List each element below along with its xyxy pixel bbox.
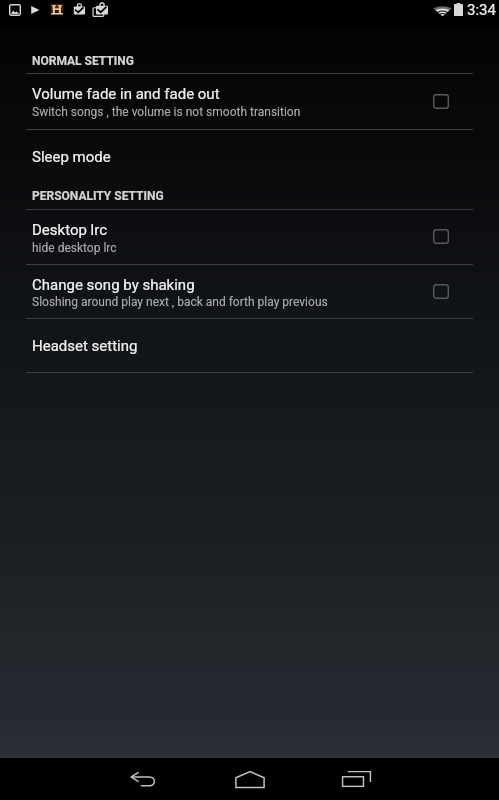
staticText: NORMAL SETTING	[32, 54, 134, 68]
button[interactable]: Back	[117, 758, 170, 800]
staticText: Switch songs , the volume is not smooth …	[32, 105, 301, 119]
staticText: Volume fade in and fade out	[32, 85, 220, 103]
button[interactable]: Home	[223, 758, 276, 800]
button[interactable]: Sleep mode	[0, 129, 499, 184]
button[interactable]: Recent apps	[330, 758, 383, 800]
button[interactable]: Headset setting	[0, 318, 499, 372]
staticText: hide desktop lrc	[32, 241, 117, 255]
staticText: Headset setting	[32, 337, 138, 355]
staticText: Desktop lrc	[32, 221, 108, 239]
staticText: 3:34	[467, 1, 496, 19]
staticText: Sleep mode	[32, 148, 111, 166]
staticText: PERSONALITY SETTING	[32, 189, 164, 203]
button[interactable]: Desktop lrc	[0, 209, 499, 264]
staticText: Change song by shaking	[32, 276, 195, 294]
staticText: Sloshing around play next , back and for…	[32, 295, 328, 309]
button[interactable]: Change song by shaking	[0, 264, 499, 318]
button[interactable]: Volume fade in and fade out	[0, 73, 499, 129]
